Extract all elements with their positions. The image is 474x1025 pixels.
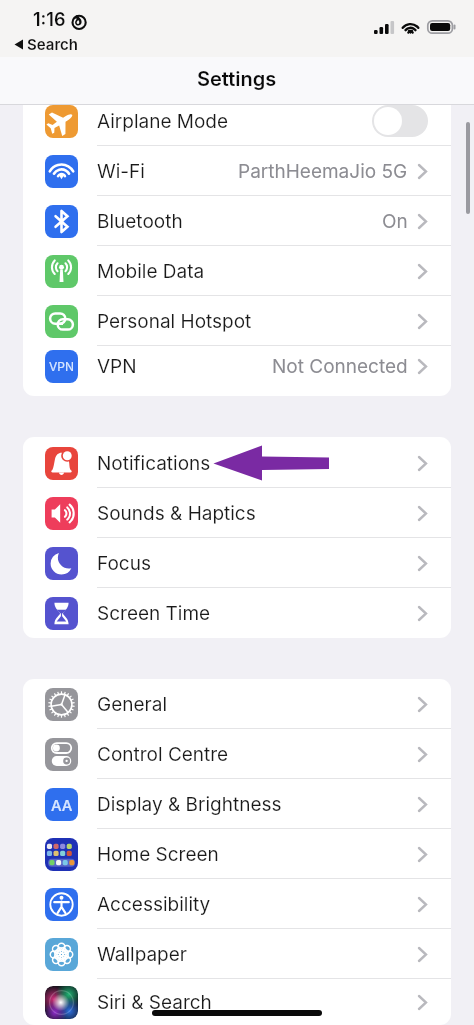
button[interactable]: Search <box>14 35 78 53</box>
staticText: Accessibility <box>97 893 211 916</box>
button[interactable]: Mobile Data <box>23 246 451 296</box>
button[interactable]: Airplane Mode <box>23 105 451 146</box>
staticText: On <box>382 210 408 233</box>
staticText: Home Screen <box>97 843 219 866</box>
button[interactable]: AA <box>23 779 451 829</box>
staticText: Wallpaper <box>97 943 187 966</box>
staticText: Focus <box>97 552 151 575</box>
staticText: Bluetooth <box>97 210 183 233</box>
staticText: Personal Hotspot <box>97 310 252 333</box>
button[interactable]: Siri & Search <box>23 979 451 1025</box>
staticText: Settings <box>197 67 277 91</box>
button[interactable]: General <box>23 679 451 729</box>
staticText: AA <box>51 796 73 814</box>
staticText: VPN <box>97 355 137 378</box>
staticText: VPN <box>49 359 74 374</box>
button[interactable]: Accessibility <box>23 879 451 929</box>
staticText: Siri & Search <box>97 991 212 1014</box>
staticText: Control Centre <box>97 743 229 766</box>
staticText: 1:16 <box>33 9 66 31</box>
staticText: Notifications <box>97 452 211 475</box>
staticText: Not Connected <box>272 355 408 378</box>
button[interactable]: Sounds & Haptics <box>23 488 451 538</box>
button[interactable]: Screen Time <box>23 588 451 638</box>
staticText: Airplane Mode <box>97 110 229 133</box>
staticText: Wi-Fi <box>97 160 145 183</box>
staticText: Display & Brightness <box>97 793 282 816</box>
button[interactable]: Control Centre <box>23 729 451 779</box>
staticText: Sounds & Haptics <box>97 502 256 525</box>
button[interactable]: Personal Hotspot <box>23 296 451 346</box>
staticText: General <box>97 693 167 716</box>
button[interactable]: Focus <box>23 538 451 588</box>
button[interactable]: Notifications <box>23 438 451 488</box>
staticText: Search <box>27 35 78 53</box>
button[interactable]: VPN <box>23 346 451 387</box>
staticText: ParthHeemaJio 5G <box>238 160 408 183</box>
staticText: Mobile Data <box>97 260 205 283</box>
staticText: Screen Time <box>97 602 211 625</box>
button[interactable]: Bluetooth <box>23 196 451 246</box>
button[interactable]: Home Screen <box>23 829 451 879</box>
button[interactable]: Wallpaper <box>23 929 451 979</box>
button[interactable]: Wi-Fi <box>23 146 451 196</box>
